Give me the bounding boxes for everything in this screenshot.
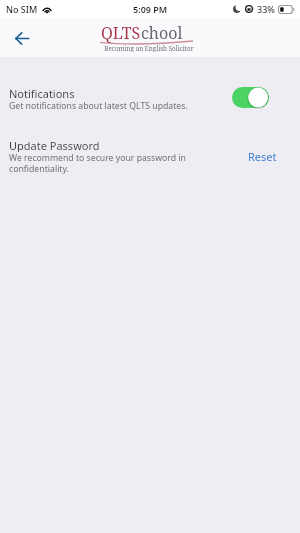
staticText: Notifications [9, 86, 75, 100]
button[interactable]: Reset [242, 144, 283, 169]
staticText: We recommend to secure your password in … [9, 152, 186, 175]
staticText: 33% [257, 3, 275, 15]
staticText: Get notifications about latest QLTS upda… [9, 100, 188, 112]
staticText: 5:09 PM [133, 3, 168, 15]
button[interactable]: Back [7, 23, 37, 53]
staticText: QLTS [101, 22, 141, 44]
button[interactable]: Notifications [0, 86, 300, 112]
staticText: chool [141, 22, 183, 44]
staticText: Becoming an English Solicitor [104, 44, 194, 52]
staticText: Reset [248, 149, 277, 164]
button[interactable]: Notifications toggle [232, 87, 269, 108]
staticText: No SIM [6, 3, 38, 15]
button[interactable]: Update Password [0, 138, 300, 175]
staticText: Update Password [9, 138, 100, 152]
